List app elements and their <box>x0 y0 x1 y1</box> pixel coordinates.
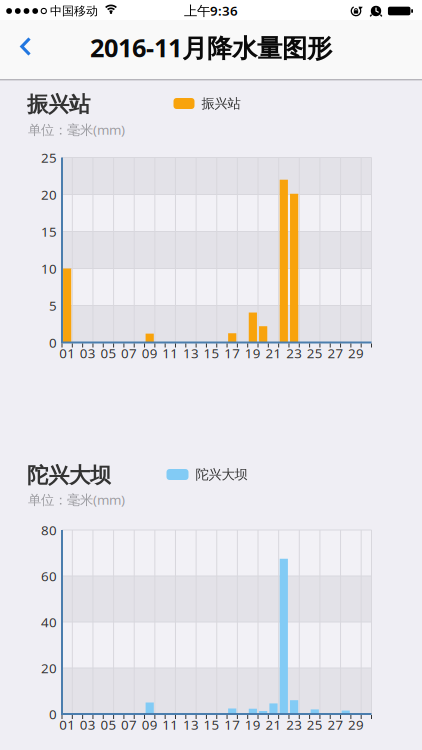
staticText: 20 <box>41 659 57 677</box>
staticText: 25 <box>307 716 323 733</box>
staticText: 15 <box>204 344 220 362</box>
staticText: 05 <box>100 716 116 733</box>
button[interactable]: 振兴站 <box>173 95 240 112</box>
staticText: 27 <box>327 344 343 362</box>
staticText: 5 <box>49 297 57 314</box>
staticText: 2016-11月降水量图形 <box>90 31 332 64</box>
staticText: 60 <box>41 567 57 585</box>
staticText: 13 <box>183 344 199 362</box>
staticText: 25 <box>41 149 57 166</box>
staticText: 13 <box>183 716 199 733</box>
staticText: 21 <box>265 716 281 733</box>
staticText: 07 <box>121 344 137 362</box>
staticText: 陀兴大坝 <box>195 466 247 483</box>
staticText: 01 <box>59 344 75 362</box>
staticText: 振兴站 <box>27 91 90 118</box>
button[interactable] <box>0 30 44 63</box>
staticText: 0 <box>49 705 57 723</box>
staticText: 单位：毫米(mm) <box>28 121 125 138</box>
staticText: 29 <box>348 716 364 733</box>
staticText: 40 <box>41 613 57 631</box>
staticText: 23 <box>286 716 302 733</box>
staticText: 15 <box>41 223 57 240</box>
staticText: 03 <box>80 344 96 362</box>
staticText: 20 <box>41 186 57 203</box>
staticText: 17 <box>224 344 240 362</box>
staticText: 上午9:36 <box>184 2 238 19</box>
staticText: 单位：毫米(mm) <box>28 491 125 508</box>
staticText: 09 <box>142 716 158 733</box>
staticText: 陀兴大坝 <box>27 462 111 489</box>
staticText: 29 <box>348 344 364 362</box>
staticText: 09 <box>142 344 158 362</box>
staticText: 25 <box>307 344 323 362</box>
staticText: 05 <box>100 344 116 362</box>
staticText: 03 <box>80 716 96 733</box>
staticText: 27 <box>327 716 343 733</box>
staticText: 80 <box>41 521 57 539</box>
staticText: 19 <box>245 344 261 362</box>
staticText: 23 <box>286 344 302 362</box>
staticText: 07 <box>121 716 137 733</box>
staticText: 中国移动 <box>50 4 98 18</box>
button[interactable]: 陀兴大坝 <box>166 466 247 483</box>
staticText: 11 <box>162 716 178 733</box>
staticText: 10 <box>41 260 57 277</box>
staticText: 19 <box>245 716 261 733</box>
staticText: 0 <box>49 334 57 351</box>
staticText: 01 <box>59 716 75 733</box>
staticText: 15 <box>204 716 220 733</box>
staticText: 振兴站 <box>201 95 240 112</box>
staticText: 11 <box>162 344 178 362</box>
staticText: 21 <box>265 344 281 362</box>
staticText: 17 <box>224 716 240 733</box>
